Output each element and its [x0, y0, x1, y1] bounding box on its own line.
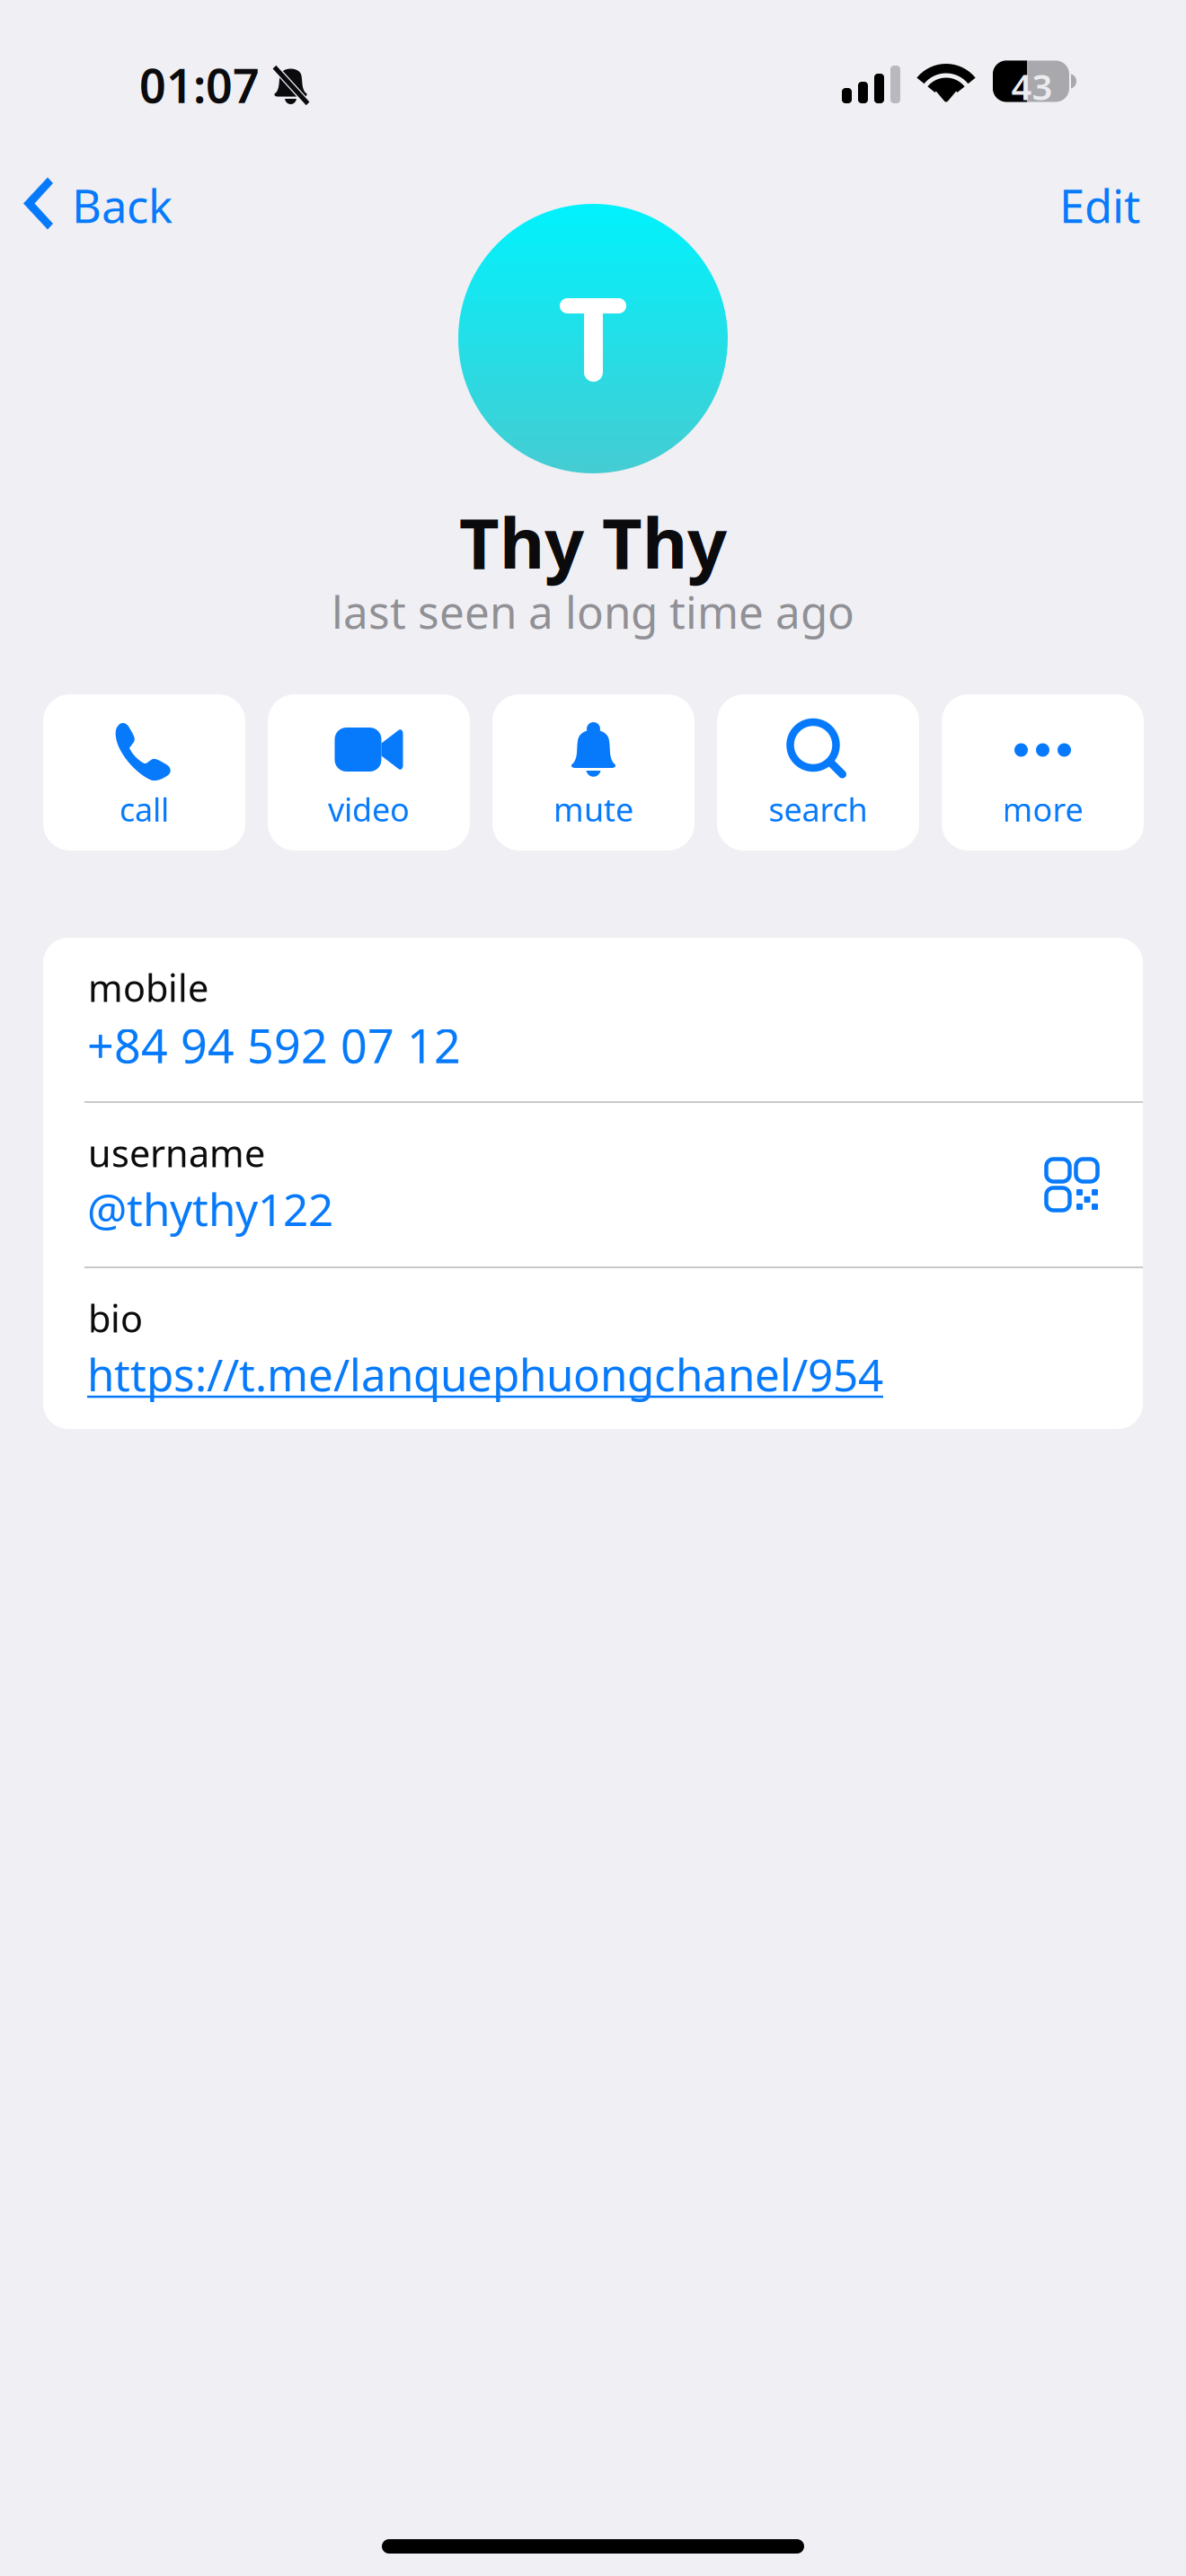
staticText: mute [553, 788, 633, 831]
staticText: 43 [1011, 62, 1053, 110]
button[interactable]: Back [0, 160, 198, 246]
button[interactable]: more [942, 694, 1144, 851]
staticText: search [769, 788, 867, 831]
staticText: last seen a long time ago [332, 582, 854, 641]
button[interactable]: search [717, 694, 919, 851]
button[interactable]: bio [43, 1268, 1143, 1432]
button[interactable]: Edit [1024, 160, 1186, 246]
staticText: Back [72, 175, 173, 236]
button[interactable]: video [268, 694, 470, 851]
staticText: mobile [88, 963, 208, 1012]
button[interactable]: mute [492, 694, 695, 851]
staticText: call [119, 788, 169, 831]
button[interactable]: call [43, 694, 245, 851]
staticText: Thy Thy [459, 496, 727, 588]
staticText: +84 94 592 07 12 [87, 1014, 461, 1076]
staticText: Edit [1059, 175, 1140, 236]
staticText: @thythy122 [87, 1179, 333, 1238]
staticText: video [328, 788, 410, 831]
staticText: bio [88, 1293, 143, 1343]
staticText: more [1002, 788, 1083, 831]
button[interactable]: mobile [43, 938, 1143, 1101]
staticText: username [88, 1128, 265, 1177]
staticText: https://t.me/lanquephuongchanel/954 [87, 1345, 883, 1403]
button[interactable]: username [43, 1103, 1143, 1266]
staticText: 01:07 [139, 54, 260, 116]
